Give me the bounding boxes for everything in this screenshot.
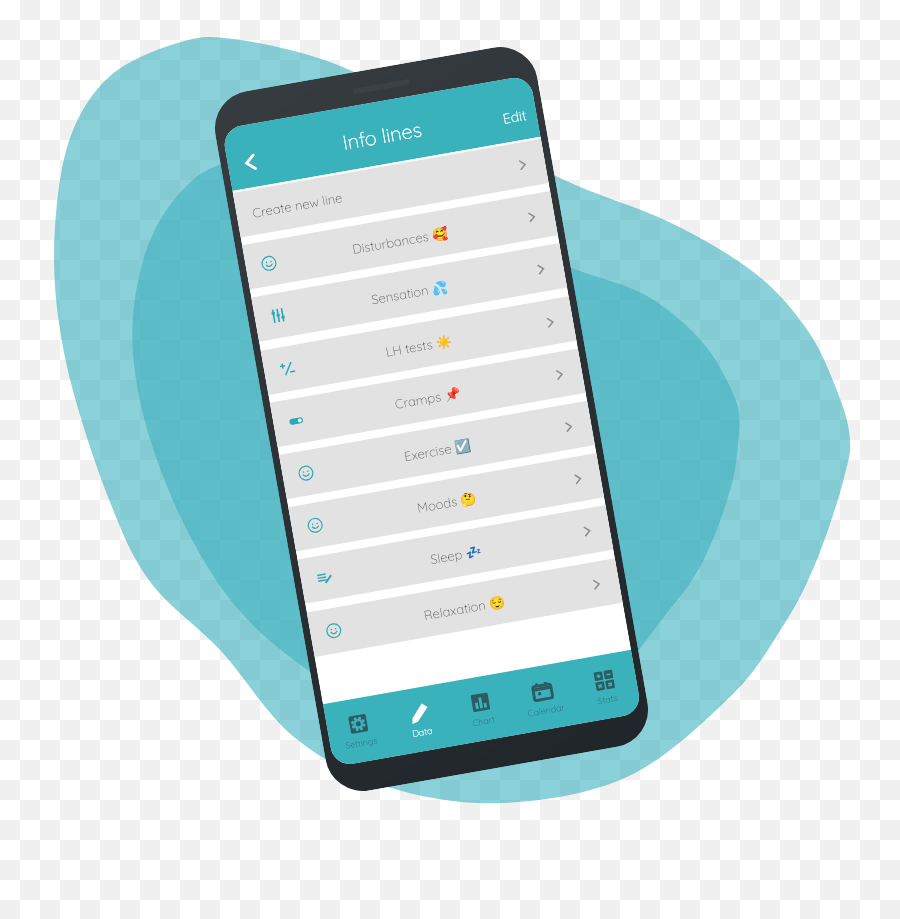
staticText: Sensation 💦: [370, 278, 450, 307]
staticText: Stats: [596, 692, 619, 706]
staticText: Chart: [471, 714, 496, 728]
staticText: Create new line: [251, 189, 343, 221]
button[interactable]: Data: [384, 683, 456, 756]
staticText: Disturbances 🥰: [351, 224, 449, 257]
button[interactable]: Create new line: [233, 139, 549, 237]
button[interactable]: Moods 🤔: [288, 453, 604, 552]
button[interactable]: Calendar: [507, 661, 580, 735]
button[interactable]: Cramps 📌: [270, 348, 586, 447]
button[interactable]: Exercise ☑️: [279, 401, 595, 499]
staticText: Info lines: [340, 116, 424, 155]
staticText: Edit: [501, 106, 528, 128]
staticText: Moods 🤔: [416, 489, 478, 516]
staticText: Calendar: [527, 701, 566, 719]
staticText: Relaxation 😌: [423, 593, 507, 623]
staticText: Sleep 💤: [429, 542, 483, 567]
button[interactable]: Relaxation 😌: [307, 558, 623, 657]
button[interactable]: Back: [236, 147, 266, 177]
staticText: Settings: [344, 734, 379, 751]
staticText: Exercise ☑️: [403, 437, 472, 464]
button[interactable]: Disturbances 🥰: [242, 191, 558, 290]
button[interactable]: Stats: [569, 650, 642, 724]
staticText: Data: [411, 724, 434, 739]
button[interactable]: Sleep 💤: [297, 505, 613, 604]
button[interactable]: Edit: [496, 75, 538, 128]
button[interactable]: Settings: [323, 693, 395, 767]
staticText: Cramps 📌: [393, 385, 462, 412]
button[interactable]: Chart: [445, 672, 518, 746]
staticText: LH tests ☀️: [384, 332, 454, 360]
button[interactable]: LH tests ☀️: [260, 296, 577, 395]
button[interactable]: Sensation 💦: [251, 243, 567, 342]
